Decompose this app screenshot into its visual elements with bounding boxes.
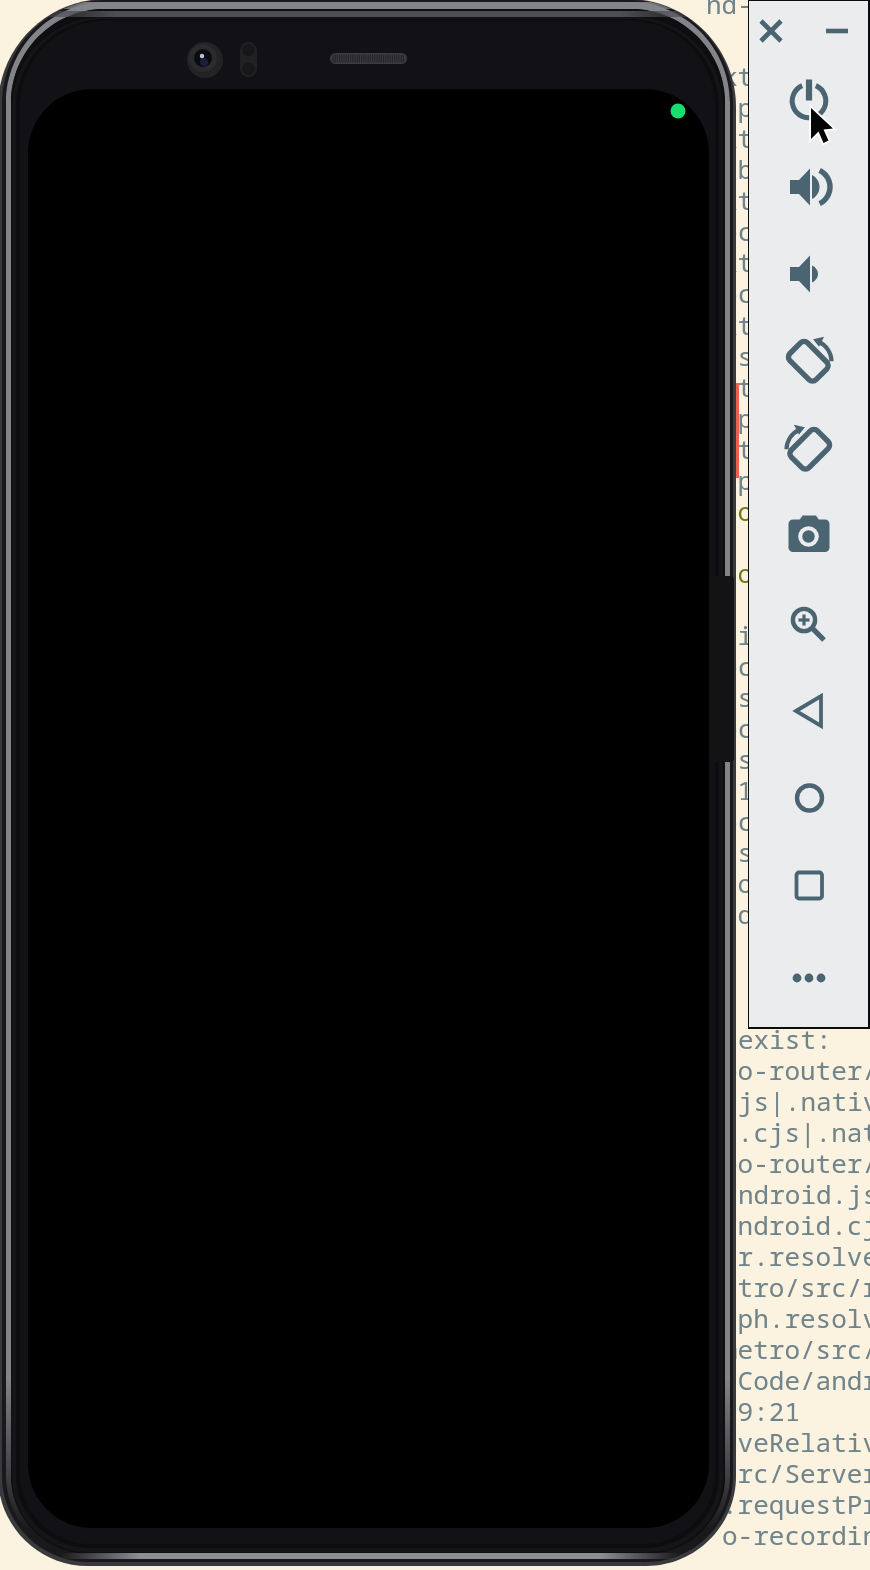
button[interactable]: Power <box>765 56 853 143</box>
staticText: nd-backup <box>706 0 847 21</box>
staticText: kti <box>722 244 769 279</box>
staticText: kti <box>722 307 769 342</box>
button[interactable]: Rotate left <box>765 317 853 404</box>
staticText: t1- <box>722 772 769 807</box>
button[interactable]: Take screenshot <box>765 492 853 579</box>
staticText: d.cjs|.nat <box>722 1114 870 1149</box>
staticText: lveRelativ <box>722 1424 870 1459</box>
staticText: /p- <box>722 89 769 124</box>
staticText: po-router/ <box>722 1052 870 1087</box>
staticText: kti <box>722 431 769 466</box>
staticText: /p- <box>722 400 769 435</box>
button[interactable]: Home <box>765 754 853 841</box>
staticText: exist: <box>738 1021 832 1056</box>
staticText: top <box>722 555 769 590</box>
staticText: ocr <box>722 648 769 683</box>
button[interactable]: Minimize <box>815 9 859 53</box>
button[interactable]: Zoom <box>765 580 853 667</box>
staticText: metro/src/ <box>722 1331 870 1366</box>
staticText: po-router/ <box>722 1145 870 1180</box>
staticText: ndo <box>722 896 769 931</box>
staticText: o-recording <box>722 1517 870 1552</box>
staticText: android.cj <box>722 1207 870 1242</box>
button[interactable]: Overview <box>765 841 853 928</box>
staticText: sod <box>722 865 769 900</box>
staticText: esm <box>722 338 769 373</box>
staticText: ktu <box>722 58 769 93</box>
button[interactable]: Volume down <box>765 230 853 317</box>
staticText: aph.resolv <box>722 1300 870 1335</box>
staticText: kti <box>722 369 769 404</box>
staticText: ocr <box>722 275 769 310</box>
staticText: ci. <box>722 617 769 652</box>
staticText: /Code/andr <box>722 1362 870 1397</box>
staticText: ndroid.js <box>738 1176 870 1211</box>
button[interactable]: Rotate right <box>765 405 853 492</box>
staticText: ocr <box>722 213 769 248</box>
staticText: ocr <box>722 710 769 745</box>
staticText: src/Server <box>722 1455 870 1490</box>
button[interactable]: Back <box>765 667 853 754</box>
staticText: etro/src/r <box>722 1269 870 1304</box>
staticText: ocr <box>722 803 769 838</box>
staticText: kti <box>722 182 769 217</box>
staticText: tsr <box>722 834 769 869</box>
staticText: 39:21 <box>722 1393 801 1428</box>
button[interactable]: Volume up <box>765 143 853 230</box>
staticText: ts- <box>722 679 769 714</box>
staticText: js|.nativ <box>738 1083 870 1118</box>
staticText: er.resolve <box>722 1238 870 1273</box>
staticText: kti <box>722 120 769 155</box>
button[interactable]: More options <box>765 934 853 1021</box>
button[interactable]: Close <box>749 9 793 53</box>
staticText: .requestPr <box>722 1486 870 1521</box>
staticText: top <box>722 493 769 528</box>
staticText: tsr <box>722 741 769 776</box>
staticText: /p- <box>722 462 769 497</box>
staticText: nbs <box>722 151 769 186</box>
